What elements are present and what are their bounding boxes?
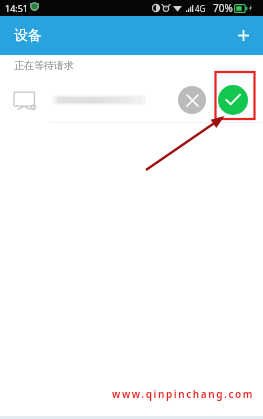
staticText: 14:51	[5, 2, 29, 14]
button[interactable]: Reject	[0, 80, 263, 120]
staticText: 70%	[213, 1, 233, 15]
button[interactable]: Reject	[178, 86, 206, 114]
staticText: www.qinpinchang.com	[112, 387, 255, 401]
staticText: 4G	[195, 3, 206, 14]
staticText: 正在等待请求	[14, 59, 74, 72]
button[interactable]: Add device	[224, 16, 263, 55]
staticText: 设备	[14, 27, 42, 45]
button[interactable]: Accept	[218, 85, 248, 115]
